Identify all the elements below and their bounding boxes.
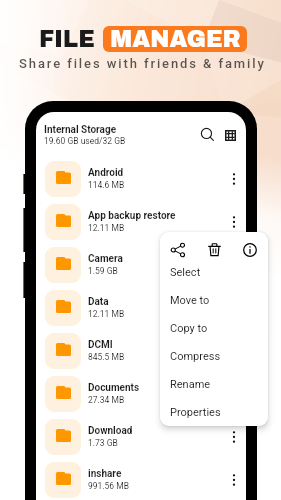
button[interactable]: inshare — [36, 458, 246, 500]
staticText: 12.11 MB — [88, 309, 125, 319]
staticText: 991.56 MB — [88, 481, 129, 491]
staticText: Rename — [170, 378, 211, 391]
button[interactable]: Android — [36, 157, 246, 200]
button[interactable]: More options — [226, 214, 242, 230]
button[interactable]: Delete — [196, 241, 232, 258]
button[interactable]: Copy to — [160, 314, 268, 342]
staticText: App backup restore — [88, 210, 176, 222]
staticText: Internal Storage — [44, 124, 117, 136]
button[interactable]: More options — [226, 472, 242, 488]
button[interactable]: Rename — [160, 370, 268, 398]
staticText: Android — [88, 167, 124, 179]
button[interactable]: DCMI — [36, 329, 246, 372]
button[interactable]: Share — [160, 241, 196, 258]
button[interactable]: Info — [232, 241, 268, 258]
button[interactable]: Select — [160, 258, 268, 286]
staticText: DCMI — [88, 339, 113, 351]
button[interactable]: Grid view — [221, 126, 239, 144]
staticText: 845.5 MB — [88, 352, 125, 362]
button[interactable]: Download — [36, 415, 246, 458]
staticText: 27.34 MB — [88, 395, 125, 405]
button[interactable]: Data — [36, 286, 246, 329]
staticText: Download — [88, 425, 133, 437]
button[interactable]: Camera — [36, 243, 246, 286]
staticText: Move to — [170, 294, 210, 307]
staticText: MANAGER — [110, 27, 241, 52]
staticText: Data — [88, 296, 109, 308]
staticText: Camera — [88, 253, 123, 265]
staticText: FILE — [39, 27, 95, 52]
staticText: 114.6 MB — [88, 180, 125, 190]
staticText: Copy to — [170, 322, 208, 335]
button[interactable]: Documents — [36, 372, 246, 415]
staticText: 12.11 MB — [88, 223, 125, 233]
button[interactable]: App backup restore — [36, 200, 246, 243]
staticText: 1.73 GB — [88, 438, 118, 448]
button[interactable]: More options — [226, 429, 242, 445]
staticText: inshare — [88, 468, 122, 480]
staticText: Properties — [170, 406, 221, 419]
staticText: Documents — [88, 382, 140, 394]
staticText: 1.59 GB — [88, 266, 118, 276]
button[interactable]: Search — [198, 125, 216, 143]
staticText: Select — [170, 266, 201, 279]
staticText: Share files with friends & family — [19, 56, 266, 71]
staticText: 19.60 GB used/32 GB — [44, 136, 126, 146]
button[interactable]: Properties — [160, 398, 268, 426]
button[interactable]: More options — [226, 171, 242, 187]
button[interactable]: Move to — [160, 286, 268, 314]
staticText: Compress — [170, 350, 221, 363]
button[interactable]: Compress — [160, 342, 268, 370]
